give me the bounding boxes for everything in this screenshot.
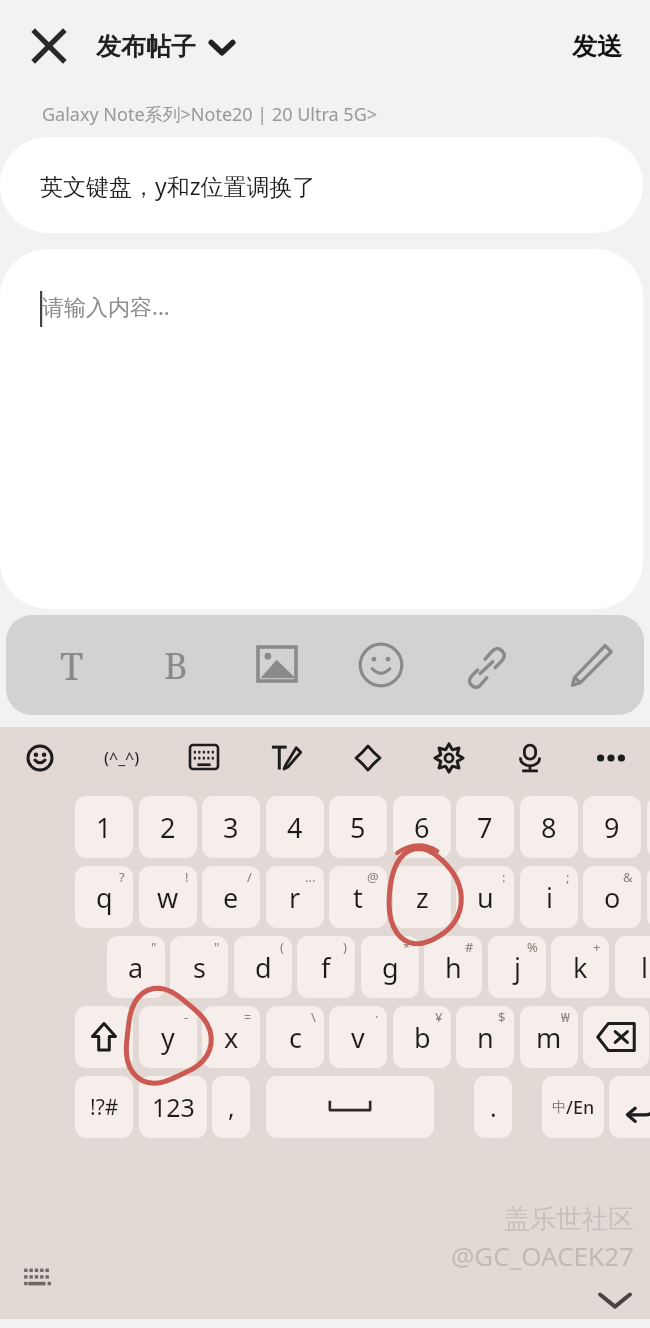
button[interactable]: Keyboard layout [178, 732, 230, 784]
button[interactable]: 0 [647, 796, 650, 858]
staticText: 发送 [572, 31, 622, 62]
staticText: i [546, 879, 553, 916]
staticText: , [228, 1090, 235, 1124]
button[interactable]: r [266, 866, 324, 928]
button[interactable]: h [424, 936, 482, 998]
staticText: * [403, 938, 411, 956]
button[interactable]: p [647, 866, 650, 928]
staticText: 1 [96, 809, 112, 846]
button[interactable]: x [202, 1006, 260, 1068]
staticText: ( [280, 938, 284, 956]
button[interactable]: 5 [329, 796, 387, 858]
staticText: m [536, 1019, 562, 1056]
button[interactable]: . [474, 1076, 512, 1138]
staticText: a [128, 949, 144, 986]
staticText: /En [566, 1095, 595, 1120]
button[interactable]: g [361, 936, 419, 998]
button[interactable]: Voice input [504, 732, 556, 784]
button[interactable]: Space [266, 1076, 434, 1138]
button[interactable]: 4 [266, 796, 324, 858]
button[interactable]: Text style [38, 631, 106, 699]
staticText: s [193, 949, 206, 986]
staticText: " [151, 938, 157, 956]
staticText: 9 [604, 809, 620, 846]
staticText: Galaxy Note系列>Note20 | 20 Ultra 5G> [42, 102, 378, 127]
button[interactable]: 8 [520, 796, 578, 858]
button[interactable]: Backspace [583, 1006, 649, 1068]
staticText: v [351, 1019, 365, 1056]
staticText: e [223, 879, 239, 916]
button[interactable]: Numbers [139, 1076, 207, 1138]
button[interactable]: n [456, 1006, 514, 1068]
staticText: @GC_OACEK27 [451, 1238, 634, 1273]
button[interactable]: b [393, 1006, 451, 1068]
button[interactable]: v [329, 1006, 387, 1068]
staticText: . [490, 1090, 497, 1124]
staticText: (^_^) [104, 747, 140, 769]
button[interactable]: z [393, 866, 451, 928]
staticText: & [623, 868, 633, 886]
button[interactable]: 6 [393, 796, 451, 858]
staticText: z [416, 879, 429, 916]
staticText: j [514, 949, 521, 986]
button[interactable]: Symbols [75, 1076, 133, 1138]
staticText: ! [185, 868, 189, 886]
button[interactable]: Shift [75, 1006, 133, 1068]
staticText: · [375, 1008, 379, 1026]
button[interactable]: s [170, 936, 228, 998]
button[interactable]: u [456, 866, 514, 928]
button[interactable]: w [139, 866, 197, 928]
staticText: ₩ [561, 1008, 570, 1026]
staticText: B [164, 641, 188, 690]
button[interactable]: Emoji [347, 631, 415, 699]
button[interactable]: 1 [75, 796, 133, 858]
staticText: g [382, 949, 399, 986]
button[interactable]: 请输入内容... [0, 249, 643, 609]
button[interactable]: k [551, 936, 609, 998]
button[interactable]: , [212, 1076, 250, 1138]
button[interactable]: Bold [142, 631, 210, 699]
button[interactable]: Enter [609, 1076, 650, 1138]
button[interactable]: a [107, 936, 165, 998]
button[interactable]: 3 [202, 796, 260, 858]
staticText: 中 [552, 1099, 566, 1117]
staticText: / [247, 868, 252, 886]
button[interactable]: Handwriting [260, 732, 312, 784]
button[interactable]: j [488, 936, 546, 998]
button[interactable]: Language switch [542, 1076, 604, 1138]
button[interactable]: d [234, 936, 292, 998]
staticText: ¥ [435, 1008, 443, 1026]
staticText: h [445, 949, 462, 986]
button[interactable]: Move keyboard [342, 732, 394, 784]
button[interactable]: Emoticons [96, 732, 148, 784]
button[interactable]: 9 [583, 796, 641, 858]
button[interactable]: 2 [139, 796, 197, 858]
staticText: c [289, 1019, 302, 1056]
button[interactable]: Insert image [244, 631, 312, 699]
button[interactable]: t [329, 866, 387, 928]
button[interactable]: c [266, 1006, 324, 1068]
button[interactable]: o [583, 866, 641, 928]
staticText: T [60, 639, 84, 691]
staticText: r [289, 879, 301, 916]
button[interactable]: More options [585, 732, 637, 784]
button[interactable]: Draw [557, 631, 625, 699]
button[interactable]: e [202, 866, 260, 928]
button[interactable]: m [520, 1006, 578, 1068]
staticText: ) [343, 938, 347, 956]
button[interactable]: Emoji [14, 732, 66, 784]
button[interactable]: l [615, 936, 650, 998]
button[interactable]: Close [26, 23, 72, 69]
staticText: 6 [414, 809, 430, 846]
button[interactable]: y [139, 1006, 197, 1068]
button[interactable]: Settings [423, 732, 475, 784]
button[interactable]: 7 [456, 796, 514, 858]
button[interactable]: f [297, 936, 355, 998]
button[interactable]: i [520, 866, 578, 928]
button[interactable]: q [75, 866, 133, 928]
button[interactable]: Insert link [452, 631, 520, 699]
button[interactable]: 发布帖子 [96, 31, 234, 62]
button[interactable]: 英文键盘，y和z位置调换了 [0, 137, 643, 233]
button[interactable]: 发送 [572, 31, 622, 62]
staticText: u [477, 879, 494, 916]
